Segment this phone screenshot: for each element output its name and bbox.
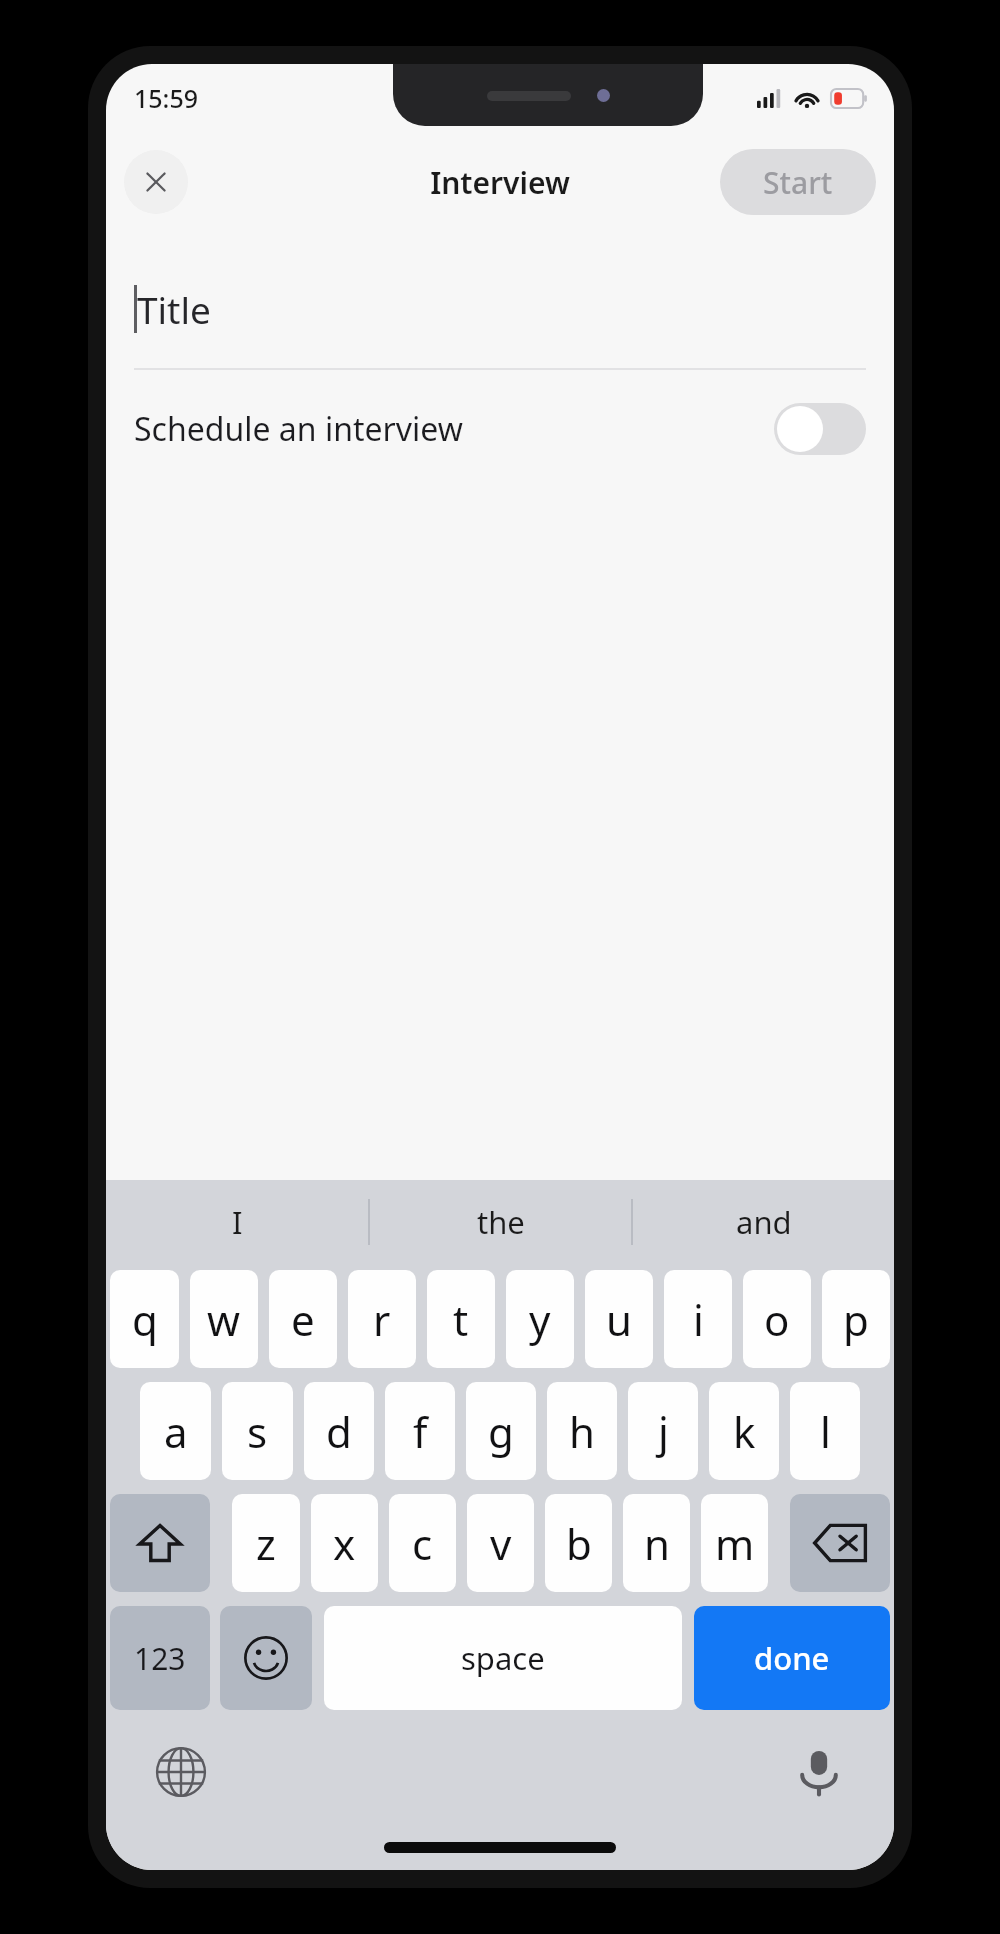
button[interactable]: Backspace [790,1494,890,1592]
staticText: 123 [134,1638,186,1679]
button[interactable]: x [311,1494,378,1592]
staticText: a [164,1403,188,1460]
button[interactable]: f [385,1382,455,1480]
button[interactable]: done [694,1606,890,1710]
staticText: Schedule an interview [134,407,463,451]
button[interactable]: t [427,1270,495,1368]
button[interactable]: b [545,1494,612,1592]
staticText: h [569,1403,595,1460]
staticText: space [461,1637,545,1679]
staticText: t [453,1291,469,1348]
button[interactable]: Shift [110,1494,210,1592]
staticText: x [333,1515,356,1572]
button[interactable]: p [822,1270,890,1368]
staticText: done [754,1637,830,1679]
button[interactable]: Close [124,150,188,214]
button[interactable]: r [348,1270,416,1368]
staticText: f [413,1403,428,1460]
button[interactable]: space [324,1606,682,1710]
button[interactable]: k [709,1382,779,1480]
button[interactable]: s [222,1382,293,1480]
button[interactable]: o [743,1270,811,1368]
button[interactable]: 123 [110,1606,210,1710]
staticText: and [736,1201,792,1243]
staticText: q [132,1291,158,1348]
button[interactable]: Schedule an interview toggle [774,403,866,455]
button[interactable]: l [790,1382,860,1480]
button[interactable]: Start [720,149,876,215]
staticText: v [490,1515,512,1572]
button[interactable]: h [547,1382,617,1480]
button[interactable]: Schedule an interview [106,370,894,488]
button[interactable]: z [232,1494,300,1592]
button[interactable]: a [140,1382,211,1480]
button[interactable]: c [389,1494,456,1592]
staticText: g [488,1403,514,1460]
button[interactable]: Emoji [220,1606,312,1710]
staticText: p [843,1291,869,1348]
staticText: u [606,1291,632,1348]
staticText: Start [763,162,833,203]
button[interactable]: Voice input [788,1741,850,1803]
button[interactable]: m [701,1494,768,1592]
button[interactable]: g [466,1382,536,1480]
button[interactable]: j [628,1382,698,1480]
staticText: the [477,1201,525,1243]
button[interactable]: i [664,1270,732,1368]
staticText: l [820,1403,831,1460]
staticText: j [658,1403,669,1460]
staticText: n [644,1515,670,1572]
button[interactable]: e [269,1270,337,1368]
staticText: o [764,1291,790,1348]
button[interactable]: n [623,1494,690,1592]
staticText: r [373,1291,391,1348]
staticText: i [693,1291,704,1348]
staticText: y [529,1291,551,1348]
staticText: Title [137,284,211,334]
staticText: I [232,1201,243,1243]
button[interactable]: d [304,1382,374,1480]
button[interactable]: w [190,1270,258,1368]
button[interactable]: u [585,1270,653,1368]
button[interactable]: v [467,1494,534,1592]
button[interactable]: I [106,1180,368,1264]
button[interactable]: and [633,1180,894,1264]
staticText: b [566,1515,592,1572]
staticText: 15:59 [134,81,199,115]
staticText: c [412,1515,433,1572]
button[interactable]: the [370,1180,631,1264]
staticText: w [207,1291,241,1348]
staticText: s [247,1403,268,1460]
button[interactable]: Change keyboard language [150,1741,212,1803]
button[interactable]: q [110,1270,179,1368]
staticText: z [256,1515,276,1572]
staticText: m [715,1515,755,1572]
button[interactable]: y [506,1270,574,1368]
staticText: e [291,1291,315,1348]
staticText: k [733,1403,756,1460]
staticText: Interview [430,162,570,203]
staticText: d [326,1403,352,1460]
